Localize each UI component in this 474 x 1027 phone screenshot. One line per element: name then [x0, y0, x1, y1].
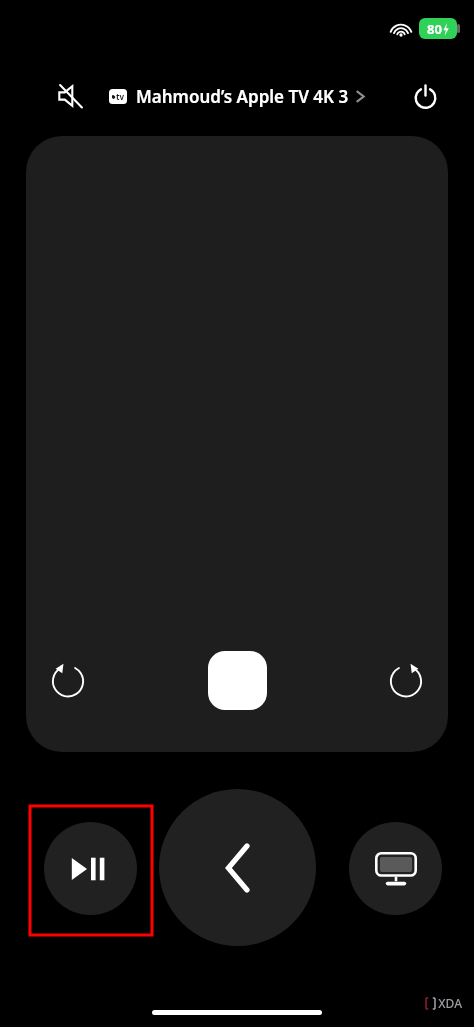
button[interactable]: Skip forward 10 seconds [380, 654, 432, 706]
button[interactable]: Touch surface [26, 136, 448, 752]
button[interactable]: TV [349, 822, 442, 915]
staticText: Mahmoud’s Apple TV 4K 3 [136, 85, 349, 108]
button[interactable]: Play or pause [44, 822, 137, 915]
staticText: tv [116, 91, 125, 102]
staticText: XDA [438, 995, 462, 1011]
staticText: 80 [427, 20, 442, 38]
button[interactable]: Power [402, 73, 448, 119]
button[interactable]: Skip back 10 seconds [42, 654, 94, 706]
button[interactable]: Mute [48, 73, 94, 119]
button[interactable]: tv [103, 81, 371, 112]
button[interactable]: Subtitles [208, 651, 267, 710]
button[interactable]: Back [159, 789, 316, 946]
